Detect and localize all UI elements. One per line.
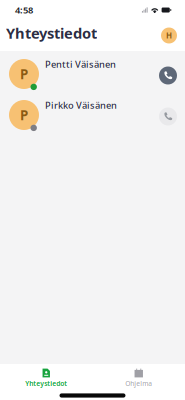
button[interactable]: Yhteystiedot [0,364,92,388]
staticText: H [166,30,172,41]
button[interactable]: Call Pirkko Väisänen [159,107,177,125]
staticText: Yhteystiedot [25,379,67,388]
button[interactable]: Call Pentti Väisänen [159,66,177,84]
staticText: Ohjelma [125,379,152,388]
staticText: Yhteystiedot [6,23,97,43]
staticText: Pentti Väisänen [45,58,116,70]
staticText: 4:58 [15,4,33,16]
button[interactable]: Ohjelma [92,364,185,388]
staticText: P [20,106,28,124]
staticText: Pirkko Väisänen [45,99,117,111]
button[interactable]: Profile [161,25,177,41]
staticText: P [20,65,28,83]
